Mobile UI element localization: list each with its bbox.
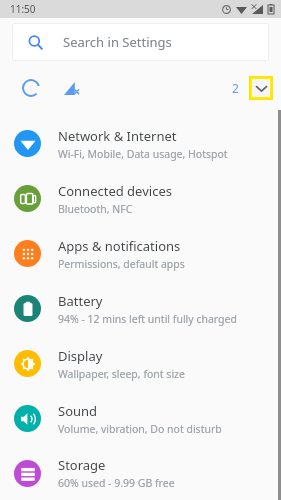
staticText: Connected devices bbox=[58, 182, 172, 200]
staticText: Wi-Fi, Mobile, Data usage, Hotspot bbox=[58, 147, 228, 161]
staticText: Search in Settings bbox=[63, 33, 172, 51]
staticText: Network & Internet bbox=[58, 127, 177, 145]
button[interactable]: Battery bbox=[0, 281, 281, 336]
button[interactable]: Apps & notifications bbox=[0, 226, 281, 281]
staticText: 2 bbox=[232, 80, 239, 96]
button[interactable]: Expand bbox=[249, 76, 273, 100]
staticText: 11:50 bbox=[10, 2, 36, 16]
staticText: Wallpaper, sleep, font size bbox=[58, 367, 185, 381]
staticText: Sound bbox=[58, 402, 98, 420]
staticText: Display bbox=[58, 347, 103, 365]
button[interactable]: Sound bbox=[0, 391, 281, 446]
button[interactable]: Search in Settings bbox=[12, 23, 269, 61]
button[interactable]: No signal bbox=[58, 75, 84, 101]
staticText: Battery bbox=[58, 292, 103, 310]
staticText: 60% used - 9.99 GB free bbox=[58, 476, 175, 490]
button[interactable]: Connected devices bbox=[0, 171, 281, 226]
button[interactable]: Sync status bbox=[18, 75, 44, 101]
staticText: 94% - 12 mins left until fully charged bbox=[58, 312, 237, 326]
staticText: Volume, vibration, Do not disturb bbox=[58, 422, 222, 436]
button[interactable]: Display bbox=[0, 336, 281, 391]
button[interactable]: Storage bbox=[0, 446, 281, 500]
staticText: Permissions, default apps bbox=[58, 257, 185, 271]
button[interactable]: Network & Internet bbox=[0, 116, 281, 171]
staticText: Apps & notifications bbox=[58, 237, 181, 255]
staticText: Storage bbox=[58, 456, 106, 474]
staticText: Bluetooth, NFC bbox=[58, 202, 133, 216]
